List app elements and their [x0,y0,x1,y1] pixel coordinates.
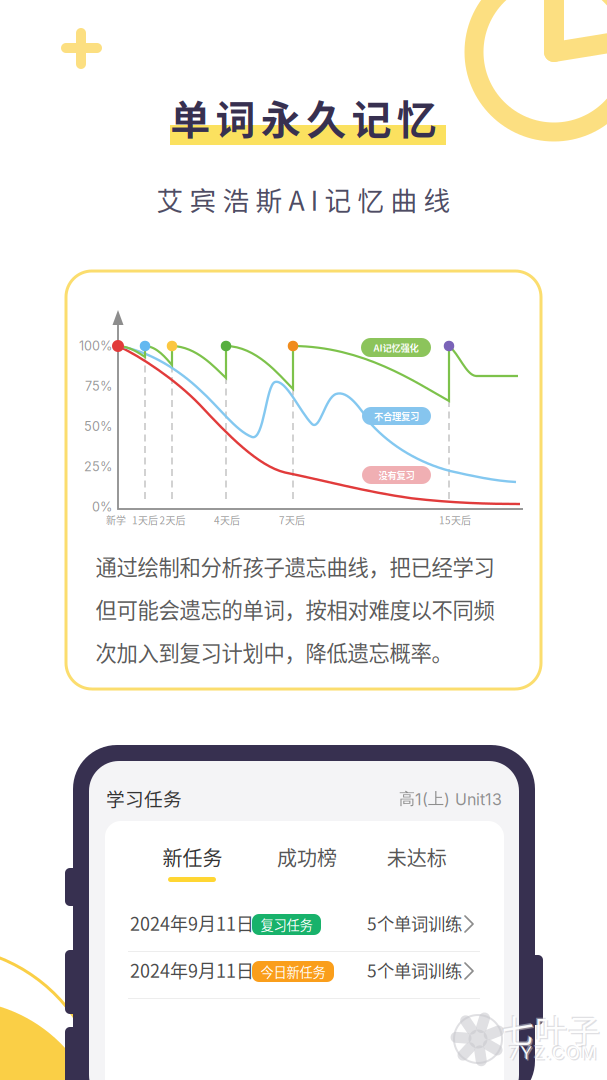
button[interactable]: 2024年9月11日 [0,0,607,1080]
staticText: 七叶子 [503,1007,601,1053]
staticText: 2024年9月11日 [130,910,254,936]
staticText: 5个单词训练 [367,957,462,983]
staticText: 七叶子 [501,1005,599,1051]
staticText: 4天后 [214,513,240,527]
staticText: 没有复习 [378,468,414,482]
staticText: 5个单词训练 [367,910,462,936]
staticText: 75% [85,379,112,394]
staticText: 不合理复习 [374,409,419,423]
staticText: 0% [92,499,112,515]
staticText: 7YZ.COM [509,1042,597,1063]
staticText: 但可能会遗忘的单词，按相对难度以不同频 [95,594,494,624]
button[interactable]: 2024年9月11日 [0,0,607,1080]
staticText: 复习任务 [260,915,312,934]
staticText: 艾宾浩斯AI记忆曲线 [156,180,450,218]
staticText: 25% [84,459,112,474]
staticText: 单词永久记忆 [170,88,437,146]
staticText: 100% [79,338,112,354]
staticText: 2024年9月11日 [130,957,254,983]
staticText: 新学 [106,513,126,527]
staticText: 新任务 [162,842,222,871]
staticText: 未达标 [387,842,447,871]
staticText: 次加入到复习计划中，降低遗忘概率。 [95,636,452,667]
button[interactable]: 成功榜 [0,0,607,1080]
staticText: 7YZ.COM [508,1041,596,1062]
button[interactable]: 未达标 [0,0,607,1080]
staticText: 七叶子 [502,1006,600,1052]
staticText: 15天后 [439,513,471,527]
button[interactable]: 新任务 [0,0,607,1080]
staticText: 成功榜 [277,842,337,871]
staticText: AI记忆强化 [373,341,418,354]
staticText: 7YZ.COM [510,1044,598,1065]
staticText: 学习任务 [106,784,182,811]
staticText: 7天后 [279,513,305,527]
staticText: 2天后 [159,513,185,527]
staticText: 50% [84,419,112,434]
staticText: 通过绘制和分析孩子遗忘曲线，把已经学习 [95,551,494,582]
staticText: 今日新任务 [260,962,325,981]
staticText: 1天后 [132,513,158,527]
staticText: 高1(上) Unit13 [399,789,502,809]
